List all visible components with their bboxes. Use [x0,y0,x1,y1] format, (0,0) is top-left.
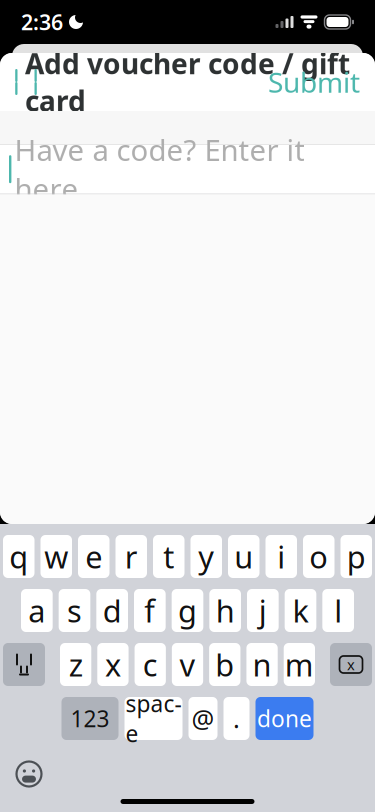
button[interactable]: v [172,643,203,686]
staticText: a [28,590,45,631]
staticText: 123 [70,703,109,733]
button[interactable]: Shift [3,643,45,686]
button[interactable]: x [97,643,129,686]
staticText: q [9,536,28,577]
button[interactable]: u [228,535,259,578]
button[interactable]: e [78,535,109,578]
staticText: r [125,536,138,577]
button[interactable]: d [96,589,128,632]
button[interactable]: n [246,643,278,686]
staticText: y [198,536,214,577]
staticText: s [67,590,82,631]
button[interactable]: done [255,697,313,740]
button[interactable]: j [247,589,279,632]
button[interactable]: r [115,535,147,578]
button[interactable]: t [153,535,184,578]
staticText: j [259,590,267,631]
button[interactable]: @ [188,697,217,740]
staticText: w [44,536,68,577]
staticText: p [347,536,366,577]
button[interactable]: b [209,643,240,686]
staticText: g [178,590,197,631]
staticText: f [144,590,155,631]
staticText: . [233,702,240,735]
staticText: x [347,655,355,674]
button[interactable]: s [59,589,90,632]
button[interactable]: y [190,535,222,578]
button[interactable]: z [60,643,91,686]
staticText: u [234,536,253,577]
staticText: e [85,536,102,577]
staticText: z [69,644,83,685]
staticText: t [163,536,174,577]
button[interactable]: l [322,589,354,632]
staticText: h [216,590,235,631]
staticText: k [292,590,308,631]
staticText: Submit [268,63,360,101]
staticText: space [125,688,181,749]
button[interactable]: f [134,589,166,632]
button[interactable]: h [209,589,241,632]
staticText: Have a code? Enter it here... [14,130,305,208]
button[interactable]: Have a code? Enter it here... [0,145,375,194]
button[interactable]: o [303,535,334,578]
staticText: c [143,644,158,685]
button[interactable]: Close [0,53,52,111]
staticText: o [309,536,328,577]
button[interactable]: m [284,643,315,686]
button[interactable]: 123 [61,697,118,740]
button[interactable]: i [265,535,297,578]
staticText: m [285,644,314,685]
button[interactable]: k [285,589,316,632]
staticText: 2:36 [21,8,63,36]
staticText: d [103,590,122,631]
button[interactable]: a [21,589,53,632]
button[interactable]: g [172,589,203,632]
staticText: @ [191,702,214,735]
staticText: b [215,644,234,685]
staticText: v [179,644,195,685]
button[interactable]: c [135,643,166,686]
button[interactable]: q [3,535,34,578]
button[interactable]: w [40,535,72,578]
staticText: n [253,644,272,685]
button[interactable]: Emoji [8,758,50,790]
staticText: done [257,703,312,733]
staticText: x [105,644,121,685]
button[interactable]: . [223,697,249,740]
button[interactable]: p [340,535,372,578]
staticText: l [334,590,342,631]
staticText: i [277,536,285,577]
button[interactable]: Delete [330,643,372,686]
staticText: Add voucher code / gift card [25,45,350,119]
button[interactable]: Submit [253,53,375,111]
button[interactable]: space [124,697,182,740]
